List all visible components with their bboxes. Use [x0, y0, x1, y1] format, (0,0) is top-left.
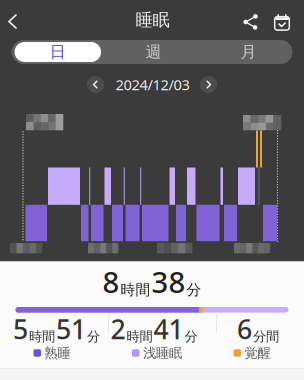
staticText: 6	[237, 311, 252, 347]
staticText: 時間	[120, 281, 150, 299]
staticText: 月	[240, 42, 256, 62]
staticText: 8	[102, 262, 119, 301]
button[interactable]: Share	[242, 13, 260, 31]
staticText: 時間	[126, 328, 152, 345]
button[interactable]: 日	[14, 42, 101, 62]
staticText: 2	[110, 311, 125, 347]
staticText: 41	[153, 311, 183, 347]
staticText: 51	[56, 311, 86, 347]
button[interactable]: 週	[110, 41, 196, 63]
button[interactable]: 月	[205, 41, 291, 63]
staticText: 2024/12/03	[115, 75, 189, 94]
staticText: 5	[13, 311, 28, 347]
staticText: 週	[145, 42, 161, 62]
staticText: 38	[151, 262, 185, 301]
staticText: 浅睡眠	[143, 345, 182, 361]
staticText: 熟睡	[44, 345, 70, 361]
button[interactable]: Back	[3, 10, 25, 32]
staticText: 分	[184, 328, 197, 345]
staticText: 時間	[29, 328, 55, 345]
button[interactable]: Next day	[200, 76, 217, 93]
button[interactable]: Previous day	[87, 76, 104, 93]
staticText: 睡眠	[135, 9, 169, 31]
staticText: 覚醒	[244, 345, 270, 361]
staticText: 分	[186, 281, 201, 299]
staticText: 分	[87, 328, 100, 345]
staticText: 日	[50, 42, 66, 62]
staticText: 分間	[253, 328, 279, 345]
button[interactable]: Calendar	[273, 13, 291, 31]
